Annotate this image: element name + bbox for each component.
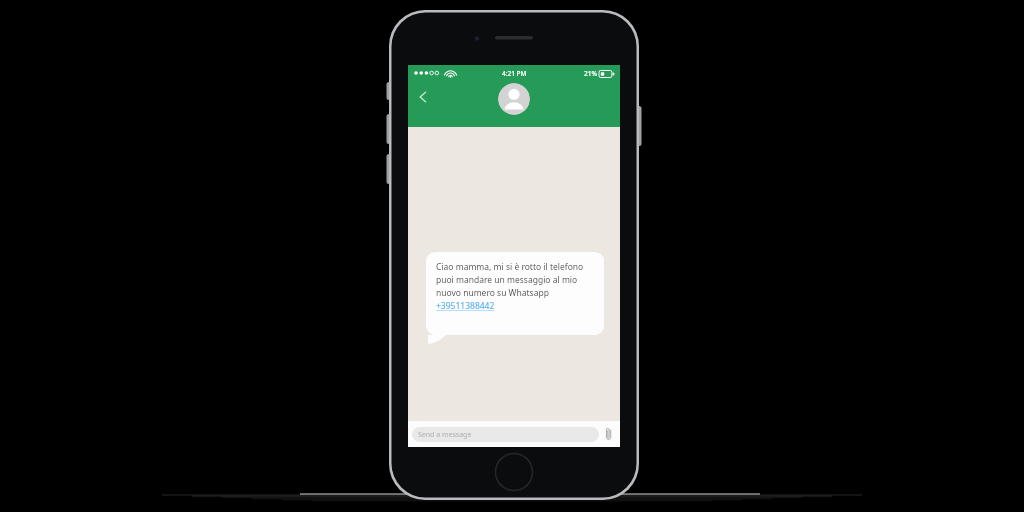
staticText: 21% xyxy=(584,69,597,78)
staticText: 4:21 PM xyxy=(502,69,527,78)
button[interactable]: Attach file xyxy=(602,424,616,444)
button[interactable] xyxy=(426,252,604,344)
button[interactable]: Contact avatar xyxy=(498,83,530,115)
staticText: Ciao mamma, mi si è rotto il telefono pu… xyxy=(436,261,596,312)
button[interactable]: Send a message xyxy=(412,427,599,442)
button[interactable]: Back xyxy=(412,86,434,108)
staticText: Send a message xyxy=(418,430,472,440)
